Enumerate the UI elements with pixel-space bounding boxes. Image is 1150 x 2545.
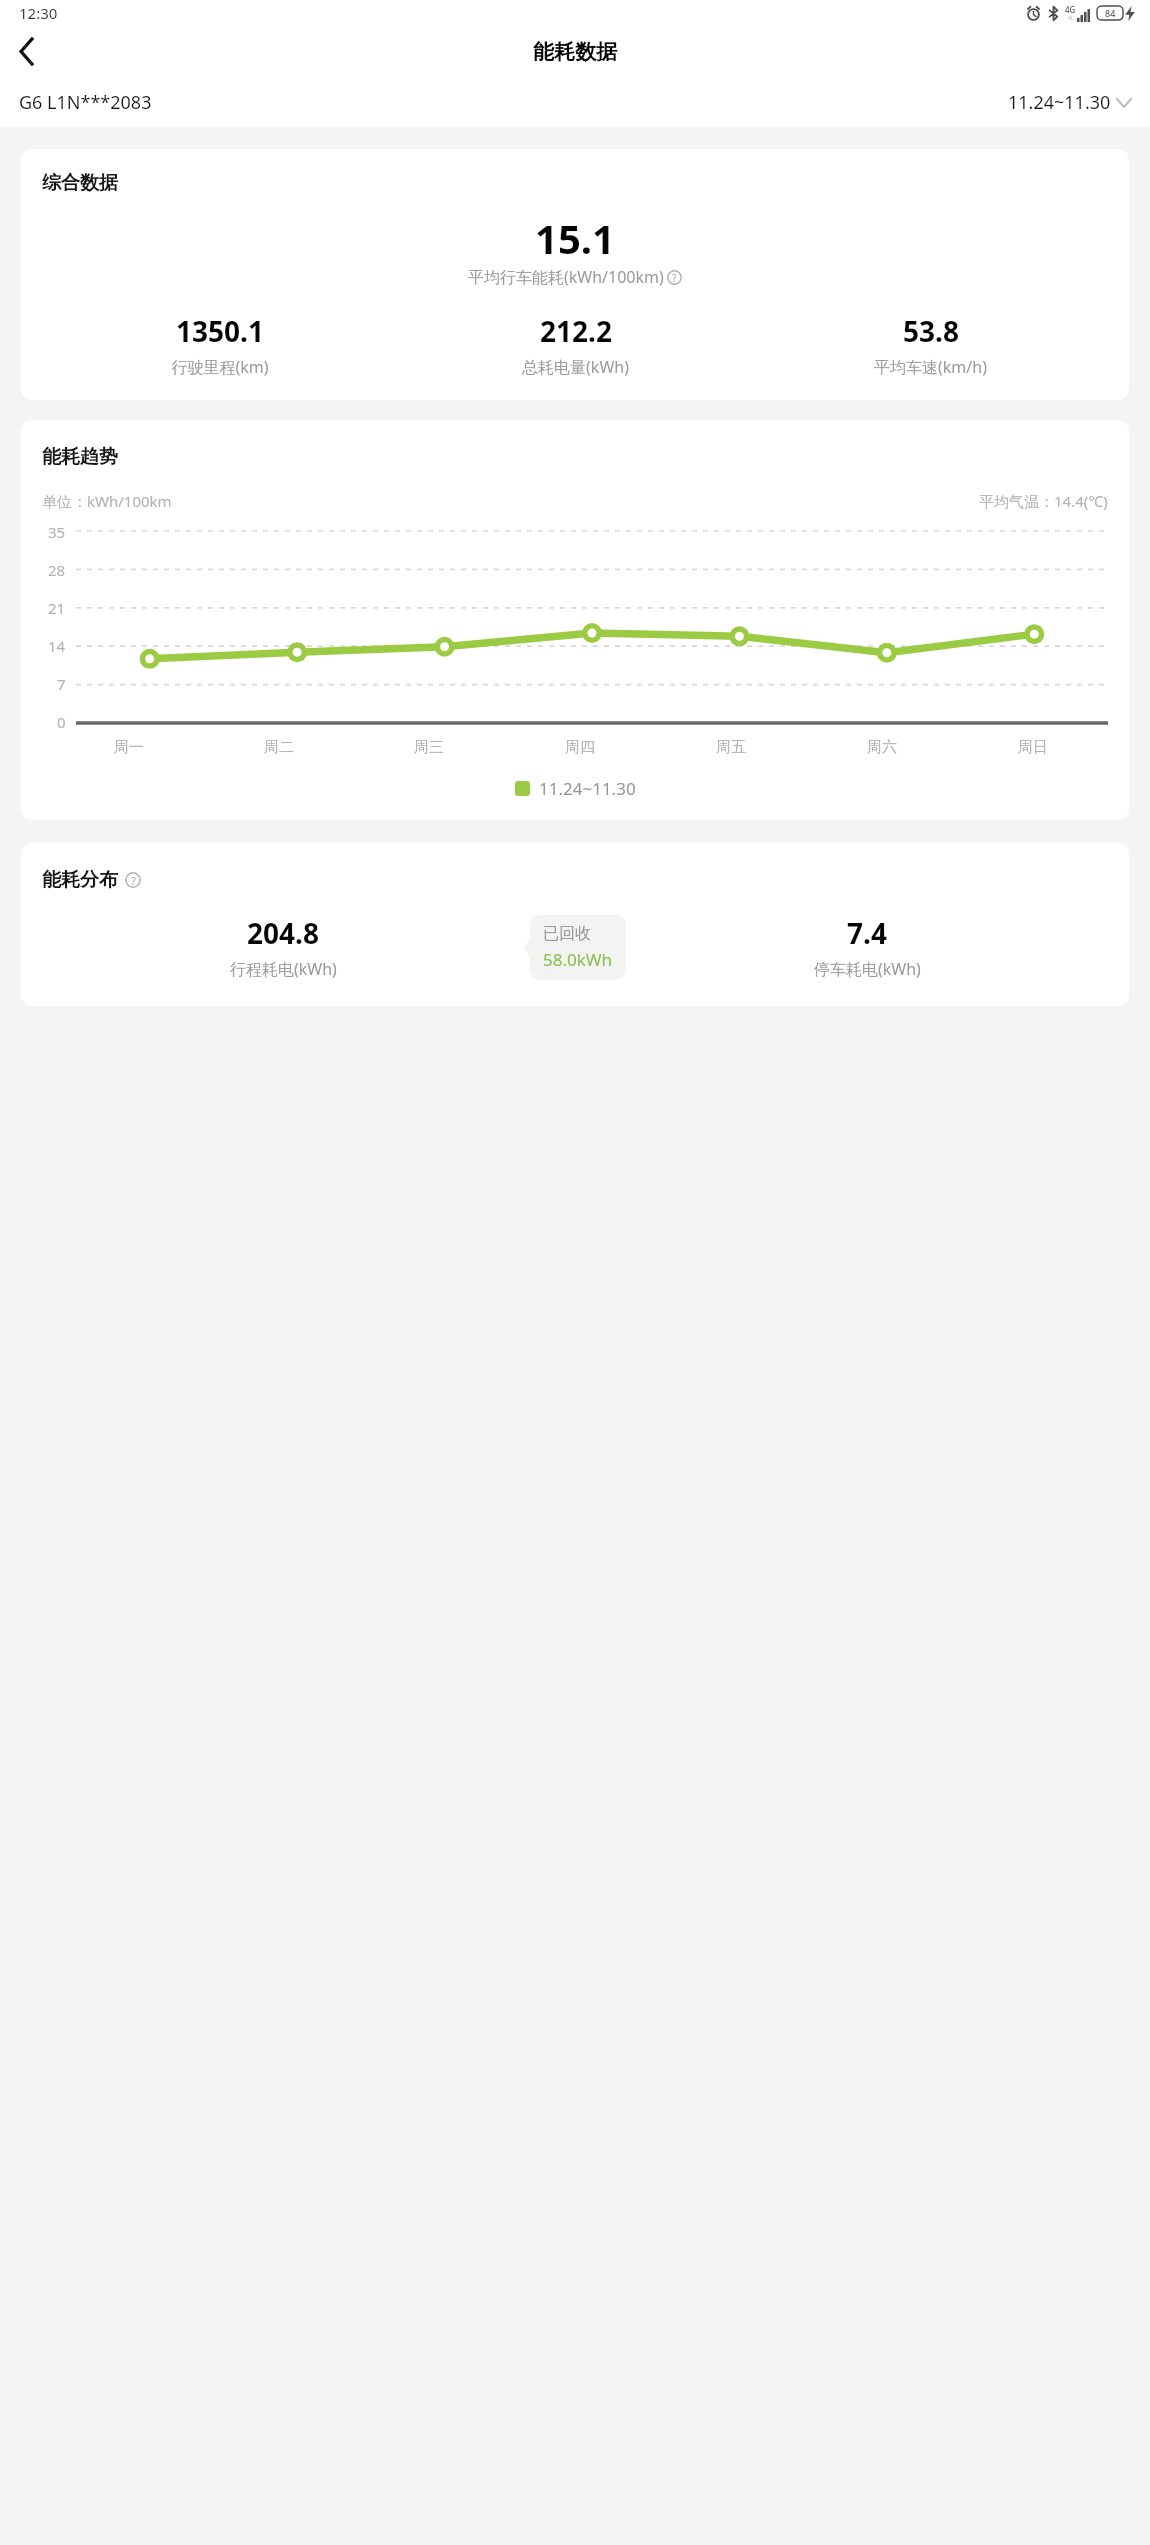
- staticText: 单位：kWh/100km: [42, 491, 172, 511]
- staticText: 平均行车能耗(kWh/100km): [468, 266, 664, 288]
- staticText: 1350.1: [176, 312, 264, 350]
- staticText: 204.8: [247, 914, 319, 952]
- staticText: 能耗数据: [533, 39, 617, 65]
- staticText: 周四: [565, 738, 595, 757]
- staticText: ?: [131, 873, 136, 888]
- staticText: 21: [48, 598, 66, 618]
- staticText: 11.24~11.30: [539, 777, 636, 800]
- staticText: 周六: [867, 738, 897, 757]
- staticText: G6 L1N***2083: [19, 90, 152, 115]
- staticText: 综合数据: [42, 171, 118, 195]
- staticText: 平均车速(km/h): [874, 356, 987, 378]
- staticText: 35: [48, 522, 66, 542]
- staticText: 周日: [1018, 738, 1048, 757]
- staticText: 7: [57, 674, 66, 694]
- staticText: 4G: [1065, 4, 1076, 15]
- staticText: 28: [48, 560, 66, 580]
- staticText: 11.24~11.30: [1008, 90, 1111, 115]
- staticText: 行程耗电(kWh): [230, 958, 337, 980]
- staticText: 平均气温：14.4(℃): [979, 491, 1108, 511]
- staticText: 7.4: [847, 914, 887, 952]
- staticText: 53.8: [903, 312, 959, 350]
- staticText: 已回收: [543, 924, 591, 944]
- staticText: 周五: [716, 738, 746, 757]
- staticText: 周二: [264, 738, 294, 757]
- staticText: 周一: [114, 738, 144, 757]
- staticText: 总耗电量(kWh): [522, 356, 629, 378]
- staticText: 能耗分布: [42, 868, 118, 892]
- staticText: 行驶里程(km): [171, 356, 269, 378]
- staticText: 15.1: [535, 211, 615, 265]
- staticText: 84: [1105, 7, 1116, 19]
- staticText: 58.0kWh: [543, 948, 613, 971]
- staticText: 周三: [414, 738, 444, 757]
- staticText: ?: [672, 271, 677, 285]
- button[interactable]: 能耗趋势: [21, 420, 1129, 820]
- staticText: 12:30: [19, 3, 58, 23]
- staticText: 4L: [1068, 15, 1074, 22]
- staticText: 能耗趋势: [42, 445, 118, 469]
- staticText: 0: [57, 712, 66, 732]
- button[interactable]: 能耗分布: [21, 843, 1129, 1006]
- button[interactable]: 综合数据: [21, 149, 1129, 400]
- staticText: 212.2: [540, 312, 612, 350]
- button[interactable]: Back: [0, 25, 52, 78]
- button[interactable]: 11.24~11.30: [1008, 90, 1131, 115]
- staticText: 14: [48, 636, 66, 656]
- staticText: 停车耗电(kWh): [814, 958, 921, 980]
